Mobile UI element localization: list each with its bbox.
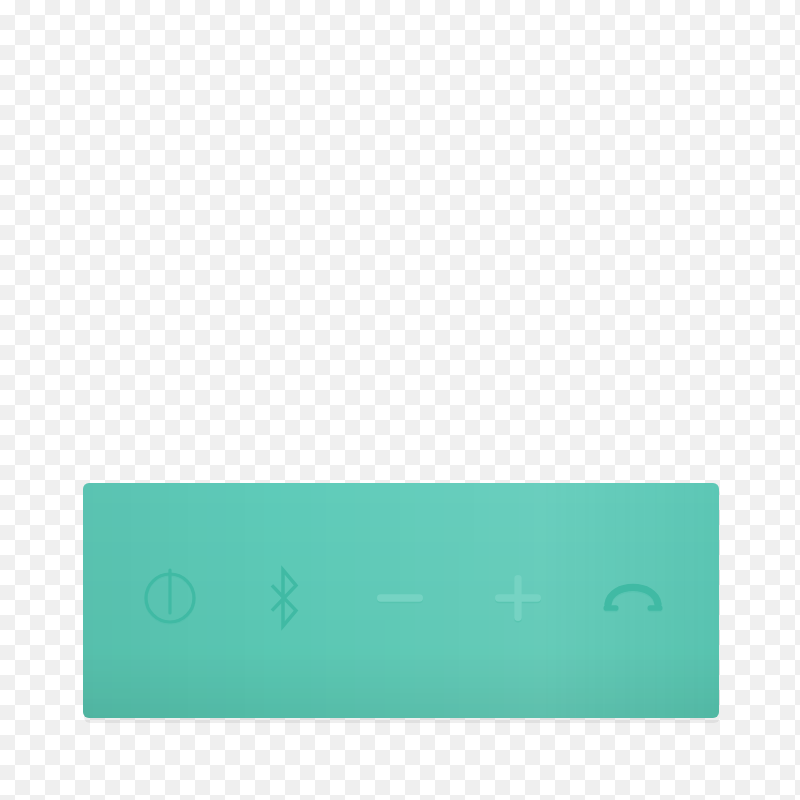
button[interactable]: Bluetooth — [249, 564, 317, 632]
button[interactable]: Volume up — [484, 564, 552, 632]
button[interactable]: Answer call — [599, 564, 667, 632]
button[interactable]: Volume down — [366, 564, 434, 632]
button[interactable]: Power — [136, 564, 204, 632]
